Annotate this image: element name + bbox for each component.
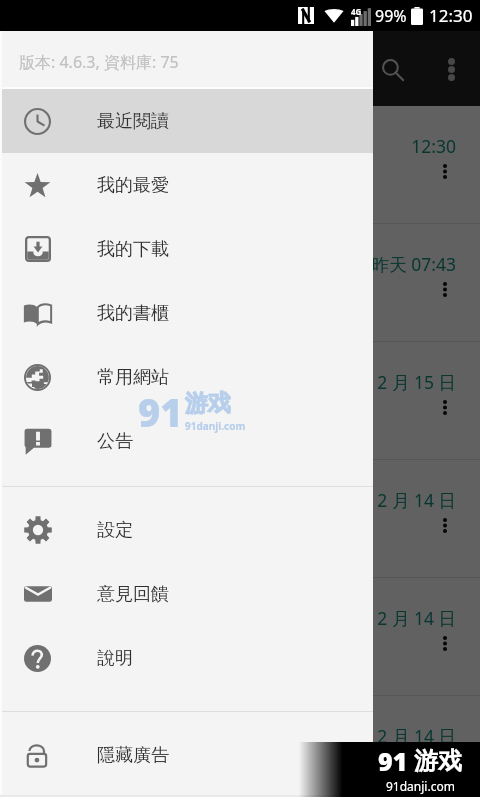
button[interactable]: 我的最愛 <box>0 153 373 217</box>
staticText: 常用網站 <box>97 366 169 389</box>
button[interactable]: 最近閱讀 <box>0 89 373 153</box>
staticText: 91danji.com <box>386 778 455 794</box>
staticText: 91 <box>378 744 408 778</box>
staticText: 2 月 14 日 <box>0 724 456 748</box>
staticText: 2 月 15 日 <box>0 370 456 394</box>
button[interactable]: 常用網站 <box>0 345 373 409</box>
staticText: 我的最愛 <box>97 174 169 197</box>
button[interactable]: 設定 <box>0 498 373 562</box>
button[interactable]: 我的下載 <box>0 217 373 281</box>
staticText: 說明 <box>97 647 133 670</box>
staticText: 最近閱讀 <box>97 110 169 133</box>
button[interactable]: 說明 <box>0 626 373 690</box>
staticText: 版本: 4.6.3, 資料庫: 75 <box>19 51 179 73</box>
staticText: 我的下載 <box>97 238 169 261</box>
staticText: 2 月 14 日 <box>0 488 456 512</box>
button[interactable]: 隱藏廣告 <box>0 723 373 787</box>
button[interactable]: 公告 <box>0 409 373 473</box>
staticText: 公告 <box>97 430 133 453</box>
button[interactable]: 昨天 07:43 <box>0 224 480 342</box>
staticText: 昨天 07:43 <box>0 252 456 276</box>
button[interactable]: 我的書櫃 <box>0 281 373 345</box>
button[interactable]: 2 月 14 日 <box>0 460 480 578</box>
staticText: 99% <box>375 5 407 27</box>
button[interactable]: More options <box>427 45 475 93</box>
staticText: 2 月 14 日 <box>0 606 456 630</box>
staticText: 設定 <box>97 519 133 542</box>
staticText: 意見回饋 <box>97 583 169 606</box>
button[interactable]: 意見回饋 <box>0 562 373 626</box>
staticText: 我的書櫃 <box>97 302 169 325</box>
button[interactable]: 2 月 14 日 <box>0 696 480 797</box>
staticText: 隱藏廣告 <box>97 744 169 767</box>
staticText: 12:30 <box>429 4 473 27</box>
staticText: 12:30 <box>0 134 456 158</box>
staticText: 91danji.com <box>185 419 246 433</box>
staticText: 游戏 <box>414 746 462 776</box>
button[interactable]: Search <box>368 45 416 93</box>
button[interactable]: 2 月 15 日 <box>0 342 480 460</box>
staticText: 91 <box>138 386 183 438</box>
staticText: 4G <box>351 6 362 17</box>
button[interactable]: 2 月 14 日 <box>0 578 480 696</box>
button[interactable]: 12:30 <box>0 106 480 224</box>
staticText: 游戏 <box>185 389 231 418</box>
